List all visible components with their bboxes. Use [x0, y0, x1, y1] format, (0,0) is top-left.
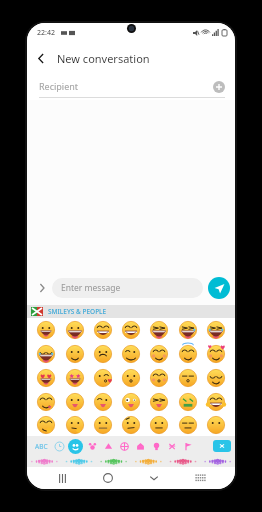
- staticText: 22:42: [37, 28, 55, 38]
- button[interactable]: Emoji: [205, 367, 227, 389]
- button[interactable]: Flags: [180, 438, 196, 454]
- button[interactable]: Home: [97, 467, 119, 489]
- staticText: ABC: [35, 442, 48, 451]
- button[interactable]: Emoji: [148, 319, 170, 341]
- button[interactable]: Emoji: [92, 367, 114, 389]
- staticText: SMILEYS & PEOPLE: [48, 307, 107, 316]
- button[interactable]: Food: [100, 438, 116, 454]
- button[interactable]: Animals: [84, 438, 100, 454]
- button[interactable]: Emoji: [205, 391, 227, 413]
- button[interactable]: Emoji: [177, 391, 199, 413]
- button[interactable]: Emoji: [148, 391, 170, 413]
- button[interactable]: Symbols: [164, 438, 180, 454]
- button[interactable]: Emoji: [148, 343, 170, 365]
- button[interactable]: Emoji: [35, 367, 57, 389]
- button[interactable]: Hide keyboard: [143, 467, 165, 489]
- button[interactable]: Emoji: [64, 343, 86, 365]
- button[interactable]: Emoji: [92, 343, 114, 365]
- button[interactable]: Smileys: [67, 438, 84, 455]
- button[interactable]: Keyboard: [189, 467, 211, 489]
- button[interactable]: Send: [208, 277, 230, 299]
- button[interactable]: Emoji: [120, 343, 142, 365]
- button[interactable]: Objects: [148, 438, 164, 454]
- button[interactable]: Emoji: [35, 319, 57, 341]
- button[interactable]: Recents: [51, 467, 73, 489]
- button[interactable]: Emoji: [92, 319, 114, 341]
- button[interactable]: Emoji: [177, 367, 199, 389]
- staticText: Recipient: [39, 80, 79, 92]
- button[interactable]: Emoji: [92, 414, 114, 436]
- button[interactable]: Enter message: [52, 278, 203, 298]
- button[interactable]: Activity: [116, 438, 132, 454]
- button[interactable]: Emoji: [35, 391, 57, 413]
- button[interactable]: Emoji: [64, 391, 86, 413]
- button[interactable]: Emoji: [64, 319, 86, 341]
- button[interactable]: Emoji: [148, 367, 170, 389]
- button[interactable]: Emoji: [148, 414, 170, 436]
- button[interactable]: Recent: [52, 439, 67, 454]
- button[interactable]: Backspace: [213, 440, 231, 452]
- button[interactable]: Emoji: [64, 414, 86, 436]
- button[interactable]: Emoji: [177, 414, 199, 436]
- button[interactable]: Emoji: [177, 319, 199, 341]
- button[interactable]: Emoji: [35, 343, 57, 365]
- button[interactable]: Emoji: [120, 319, 142, 341]
- button[interactable]: ABC: [30, 437, 52, 455]
- button[interactable]: Emoji: [120, 367, 142, 389]
- button[interactable]: Back: [27, 44, 55, 72]
- button[interactable]: Emoji: [120, 414, 142, 436]
- button[interactable]: Expand: [32, 278, 52, 298]
- button[interactable]: Emoji: [92, 391, 114, 413]
- staticText: Enter message: [61, 282, 121, 294]
- button[interactable]: Travel: [132, 438, 148, 454]
- button[interactable]: Emoji: [205, 343, 227, 365]
- button[interactable]: Emoji: [64, 367, 86, 389]
- button[interactable]: Emoji: [120, 391, 142, 413]
- button[interactable]: Add recipient: [211, 79, 227, 95]
- button[interactable]: Emoji: [205, 414, 227, 436]
- staticText: New conversation: [57, 51, 150, 66]
- button[interactable]: Emoji: [35, 414, 57, 436]
- button[interactable]: Emoji: [177, 343, 199, 365]
- button[interactable]: Emoji: [205, 319, 227, 341]
